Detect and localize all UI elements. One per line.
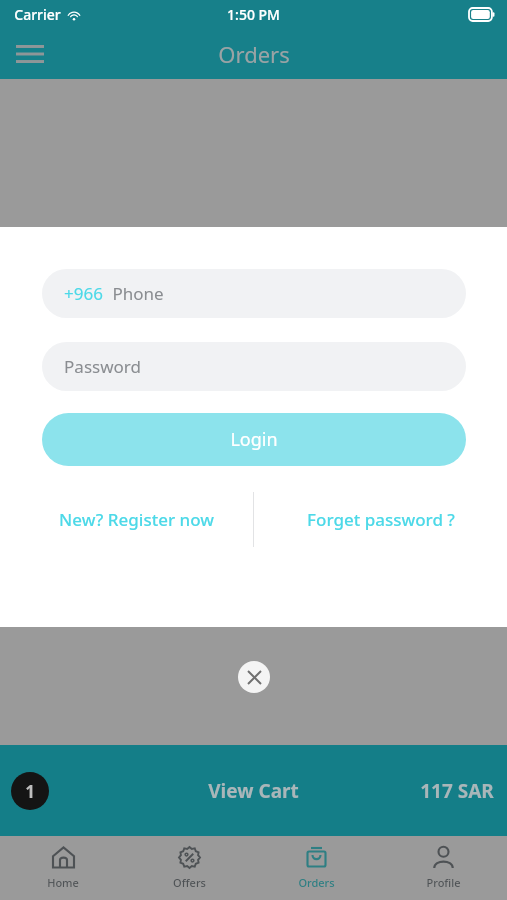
staticText: Orders (298, 875, 335, 890)
button[interactable]: Orders (253, 836, 380, 900)
staticText: 117 SAR (420, 778, 494, 804)
button[interactable]: Home (0, 836, 126, 900)
staticText: 1:50 PM (227, 5, 280, 24)
button[interactable]: Profile (380, 836, 507, 900)
button[interactable]: Menu (8, 32, 52, 76)
button[interactable]: Close (238, 661, 270, 693)
staticText: +966 (64, 282, 103, 305)
staticText: Phone (112, 282, 164, 305)
staticText: Carrier (14, 5, 61, 24)
button[interactable]: +966 (42, 269, 466, 318)
button[interactable]: Password (42, 342, 466, 391)
staticText: Orders (218, 39, 290, 69)
staticText: Profile (426, 875, 461, 890)
staticText: Forget password ? (307, 508, 455, 531)
button[interactable]: Offers (126, 836, 253, 900)
staticText: 1 (25, 780, 35, 803)
staticText: View Cart (208, 778, 299, 804)
staticText: New? Register now (59, 508, 214, 531)
button[interactable]: New? Register now (30, 492, 242, 547)
staticText: Home (47, 875, 79, 890)
staticText: Offers (173, 875, 206, 890)
button[interactable]: 1 (0, 745, 507, 836)
staticText: Password (64, 355, 141, 378)
staticText: Login (230, 427, 278, 452)
button[interactable]: Forget password ? (270, 492, 492, 547)
button[interactable]: Login (42, 413, 466, 466)
